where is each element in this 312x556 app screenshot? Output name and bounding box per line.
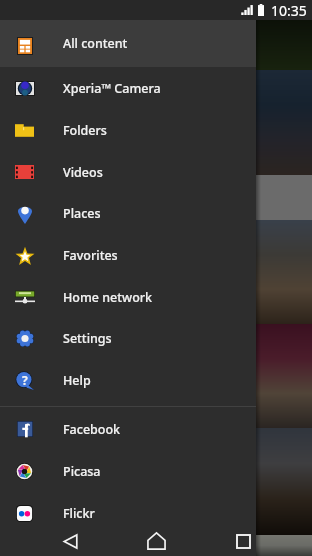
button[interactable]: Home network — [0, 276, 256, 318]
button[interactable]: Videos — [0, 151, 256, 193]
staticText: Videos — [63, 164, 103, 181]
staticText: Xperia™ Camera — [63, 80, 161, 97]
button[interactable]: Places — [0, 193, 256, 234]
staticText: ? — [22, 372, 28, 388]
staticText: Help — [63, 372, 91, 389]
button[interactable]: Flickr — [0, 492, 256, 534]
button[interactable]: Recents — [221, 526, 265, 556]
staticText: Picasa — [63, 463, 101, 480]
staticText: All content — [63, 35, 128, 52]
button[interactable]: Xperia™ Camera — [0, 67, 256, 109]
button[interactable]: Home — [134, 526, 178, 556]
staticText: 10:35 — [271, 1, 307, 20]
staticText: Folders — [63, 122, 107, 139]
button[interactable]: Back — [48, 526, 92, 556]
button[interactable]: Settings — [0, 318, 256, 359]
staticText: Places — [63, 205, 101, 222]
staticText: Facebook — [63, 421, 121, 438]
staticText: Home network — [63, 289, 153, 306]
staticText: Flickr — [63, 505, 95, 522]
button[interactable]: Favorites — [0, 234, 256, 276]
button[interactable]: Facebook — [0, 408, 256, 450]
button[interactable]: Picasa — [0, 450, 256, 492]
button[interactable]: All content — [0, 20, 256, 67]
button[interactable]: Folders — [0, 109, 256, 151]
staticText: Favorites — [63, 247, 118, 264]
button[interactable]: ? — [0, 359, 256, 401]
staticText: Settings — [63, 330, 112, 347]
